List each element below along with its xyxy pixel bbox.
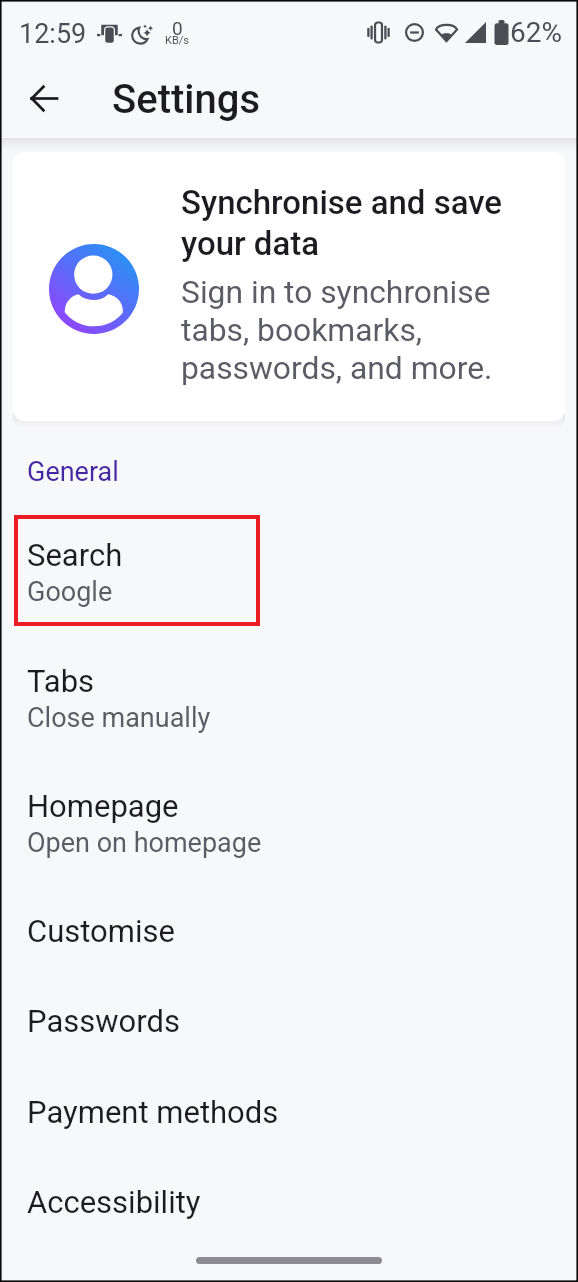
staticText: 0 — [172, 17, 183, 39]
staticText: 62% — [510, 16, 562, 49]
staticText: Customise — [27, 913, 175, 949]
staticText: KB/s — [165, 34, 189, 47]
staticText: Tabs — [27, 663, 95, 699]
button[interactable]: Passwords — [0, 979, 578, 1069]
staticText: Search — [27, 537, 123, 573]
staticText: Open on homepage — [27, 827, 262, 859]
button[interactable]: Search — [0, 513, 578, 625]
button[interactable]: Synchronise and save your data — [13, 152, 565, 421]
button[interactable]: Homepage — [0, 764, 578, 876]
staticText: Close manually — [27, 702, 211, 734]
staticText: Google — [27, 576, 113, 608]
button[interactable]: Back — [18, 72, 70, 124]
staticText: 12:59 — [19, 18, 87, 50]
staticText: Payment methods — [27, 1094, 279, 1130]
button[interactable]: Tabs — [0, 639, 578, 751]
staticText: Passwords — [27, 1003, 180, 1039]
button[interactable]: Customise — [0, 889, 578, 979]
staticText: Homepage — [27, 788, 179, 824]
staticText: General — [27, 456, 119, 488]
staticText: Sign in to synchronise tabs, bookmarks, … — [181, 273, 529, 387]
staticText: Synchronise and save your data — [181, 182, 529, 264]
staticText: Settings — [112, 76, 261, 123]
button[interactable]: Payment methods — [0, 1070, 578, 1160]
button[interactable]: Accessibility — [0, 1160, 578, 1250]
staticText: Accessibility — [27, 1184, 201, 1220]
